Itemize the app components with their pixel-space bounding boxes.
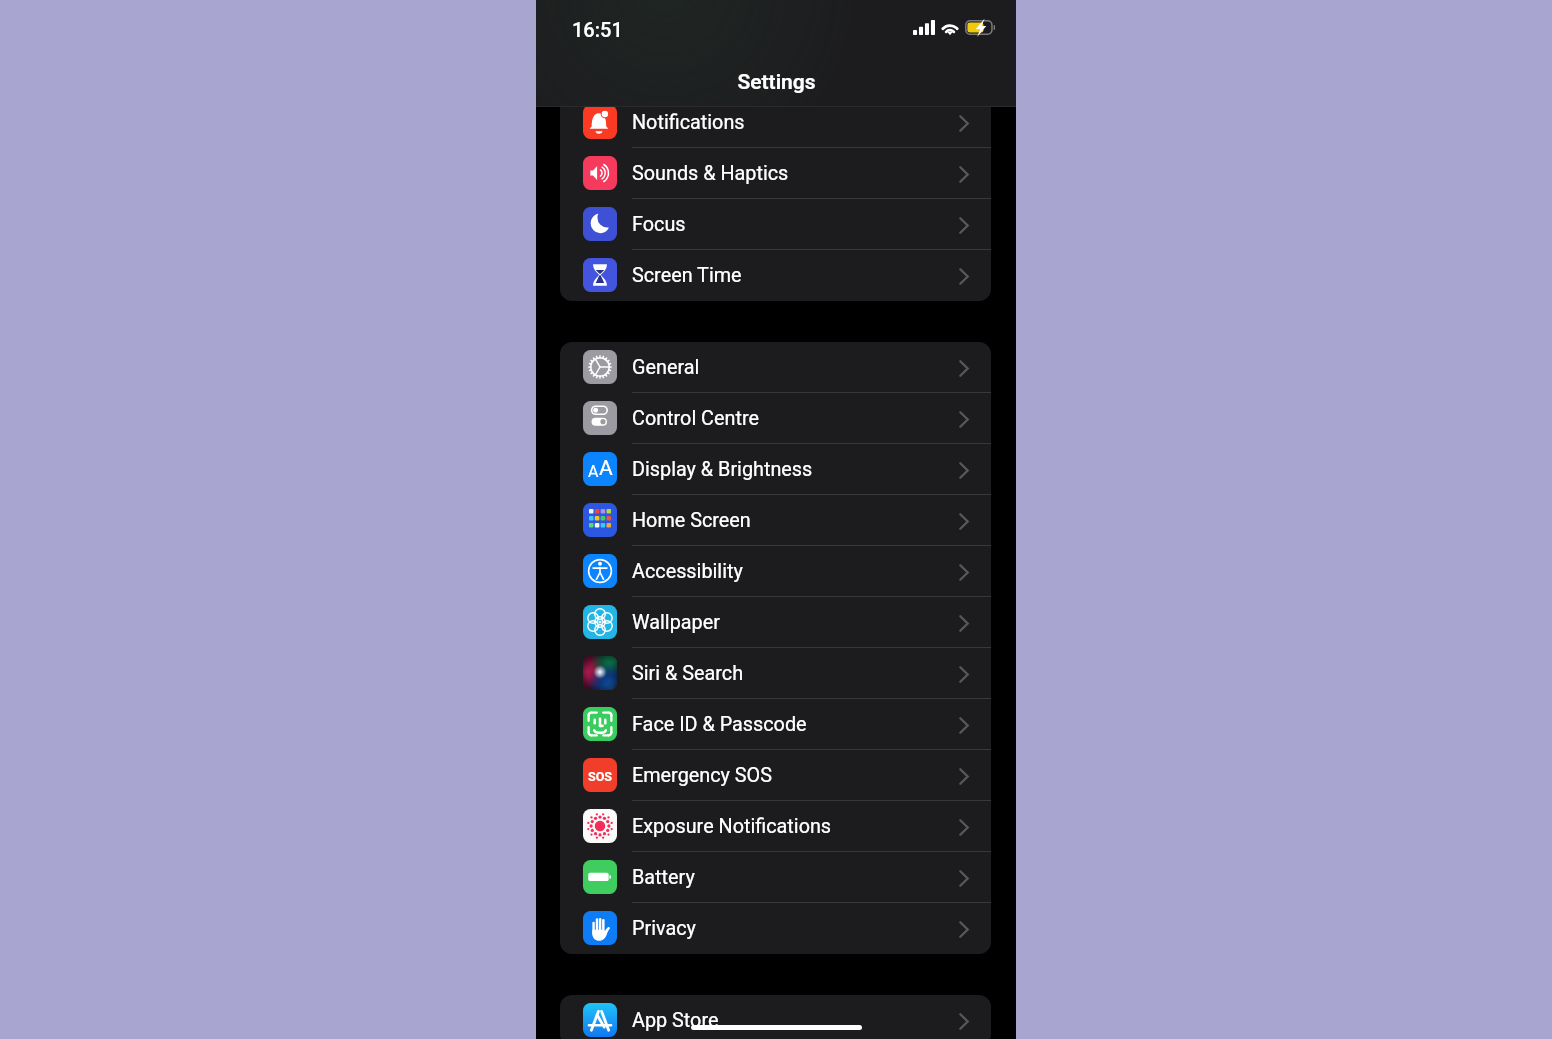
button[interactable]: Face ID & Passcode — [560, 699, 991, 750]
staticText: A — [599, 456, 613, 481]
staticText: Control Centre — [632, 407, 759, 430]
staticText: Accessibility — [632, 560, 743, 583]
button[interactable]: App Store — [560, 995, 991, 1039]
staticText: Display & Brightness — [632, 458, 813, 481]
staticText: Privacy — [632, 917, 696, 940]
staticText: Home Screen — [632, 509, 751, 532]
staticText: App Store — [632, 1009, 719, 1032]
button[interactable]: Wallpaper — [560, 597, 991, 648]
staticText: Sounds & Haptics — [632, 162, 789, 185]
button[interactable]: Control Centre — [560, 393, 991, 444]
staticText: Settings — [737, 70, 816, 95]
staticText: Focus — [632, 213, 686, 236]
staticText: Wallpaper — [632, 611, 720, 634]
staticText: SOS — [588, 769, 613, 784]
button[interactable]: Exposure Notifications — [560, 801, 991, 852]
staticText: Battery — [632, 866, 695, 889]
staticText: Siri & Search — [632, 662, 744, 685]
staticText: Face ID & Passcode — [632, 713, 807, 736]
staticText: Screen Time — [632, 264, 742, 287]
staticText: Emergency SOS — [632, 764, 772, 787]
button[interactable]: A — [560, 444, 991, 495]
staticText: 16:51 — [572, 18, 623, 41]
button[interactable]: Battery — [560, 852, 991, 903]
button[interactable]: Screen Time — [560, 250, 991, 301]
staticText: A — [588, 462, 599, 481]
button[interactable]: Siri & Search — [560, 648, 991, 699]
button[interactable]: Privacy — [560, 903, 991, 954]
button[interactable]: General — [560, 342, 991, 393]
staticText: Exposure Notifications — [632, 815, 832, 838]
button[interactable]: SOS — [560, 750, 991, 801]
button[interactable]: Accessibility — [560, 546, 991, 597]
button[interactable]: Sounds & Haptics — [560, 148, 991, 199]
staticText: General — [632, 356, 700, 379]
staticText: Notifications — [632, 111, 745, 134]
button[interactable]: Notifications — [560, 97, 991, 148]
button[interactable]: Focus — [560, 199, 991, 250]
button[interactable]: Home Screen — [560, 495, 991, 546]
